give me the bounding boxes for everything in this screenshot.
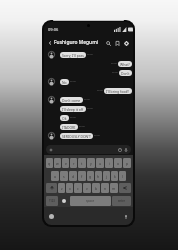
button[interactable]: m [110,183,118,193]
staticText: a [54,174,56,179]
button[interactable]: Home [49,214,54,219]
button[interactable]: r [70,158,77,168]
staticText: 09:06 [87,53,93,56]
staticText: Don't [121,71,130,76]
button[interactable]: Search [104,38,113,48]
staticText: b [95,186,98,191]
staticText: 09:06 [112,71,118,74]
button[interactable]: Shift [46,183,57,193]
staticText: 09:06 [87,107,93,110]
staticText: 09:06 [79,125,85,128]
button[interactable]: enter [112,196,131,206]
staticText: SERIOUSLY DON'T [62,134,91,139]
staticText: q [48,161,51,166]
staticText: v [86,186,88,191]
staticText: f [81,174,83,179]
button[interactable]: Voice input [123,214,128,219]
button[interactable]: ITADORI [60,124,78,130]
button[interactable]: o [114,158,122,168]
button[interactable]: n [101,183,109,193]
staticText: z [61,186,63,191]
button[interactable]: g [87,171,94,181]
staticText: h [97,174,100,179]
staticText: What? [120,62,130,67]
staticText: u [99,161,102,166]
staticText: t [81,161,83,166]
button[interactable]: I'll bring food!! [104,88,132,94]
button[interactable]: I'll sleep it off [60,106,86,112]
button[interactable]: d [69,171,77,181]
staticText: 09:06 [84,98,90,101]
button[interactable]: i [105,158,113,168]
staticText: 09:06 [48,27,59,32]
staticText: I'll sleep it off [62,107,84,112]
button[interactable]: Backspace [119,183,131,193]
button[interactable]: w [54,158,61,168]
staticText: e [65,161,67,166]
button[interactable]: What? [118,61,132,67]
button[interactable]: Emoji [59,196,69,206]
staticText: Ok [62,116,67,121]
staticText: y [90,161,92,166]
button[interactable]: j [103,171,110,181]
button[interactable]: q [46,158,53,168]
button[interactable]: h [95,171,102,181]
button[interactable]: Don't [119,70,132,76]
staticText: o [117,161,120,166]
button[interactable]: u [96,158,104,168]
button[interactable]: p [123,158,131,168]
staticText: g [89,174,92,179]
button[interactable]: t [78,158,86,168]
staticText: m [112,186,116,191]
staticText: enter [118,199,125,203]
button[interactable]: Ok [60,115,69,121]
staticText: c [77,186,79,191]
staticText: j [106,174,107,179]
button[interactable]: v [83,183,91,193]
button[interactable]: Back [46,39,54,47]
button[interactable]: f [78,171,86,181]
button[interactable]: space [70,196,111,206]
button[interactable]: k [111,171,118,181]
staticText: ITADORI [62,125,76,130]
staticText: p [126,161,129,166]
button[interactable]: z [58,183,65,193]
staticText: n [104,186,107,191]
staticText: ?123 [49,199,55,203]
button[interactable]: b [92,183,100,193]
button[interactable]: Settings [122,38,131,48]
button[interactable]: Bookmark [113,38,122,48]
staticText: x [69,186,71,191]
staticText: 09:06 [70,80,76,83]
staticText: Sorry, I'll pass [62,53,84,58]
button[interactable]: a [51,171,59,181]
button[interactable]: e [62,158,69,168]
staticText: Don't come [62,98,81,103]
staticText: s [63,174,65,179]
button[interactable]: SERIOUSLY DON'T [60,133,93,139]
button[interactable]: Don't come [60,97,83,103]
staticText: space [86,199,95,203]
staticText: k [114,174,116,179]
button[interactable]: No [60,79,69,85]
button[interactable]: x [66,183,73,193]
staticText: 09:06 [111,62,117,65]
button[interactable]: ?123 [46,196,58,206]
button[interactable]: Sorry, I'll pass [60,52,86,58]
staticText: 09:06 [94,134,100,137]
staticText: w [56,161,59,166]
staticText: 09:06 [97,89,103,92]
staticText: No [62,80,67,85]
button[interactable]: l [119,171,126,181]
staticText: r [73,161,75,166]
staticText: I'll bring food!! [106,89,130,94]
button[interactable]: s [60,171,68,181]
button[interactable]: y [87,158,95,168]
staticText: 09:06 [70,116,76,119]
staticText: Fushiguro Megumi [54,39,99,46]
button[interactable]: c [74,183,82,193]
staticText: i [109,161,110,166]
staticText: l [122,174,123,179]
staticText: d [72,174,75,179]
button[interactable] [46,145,131,154]
